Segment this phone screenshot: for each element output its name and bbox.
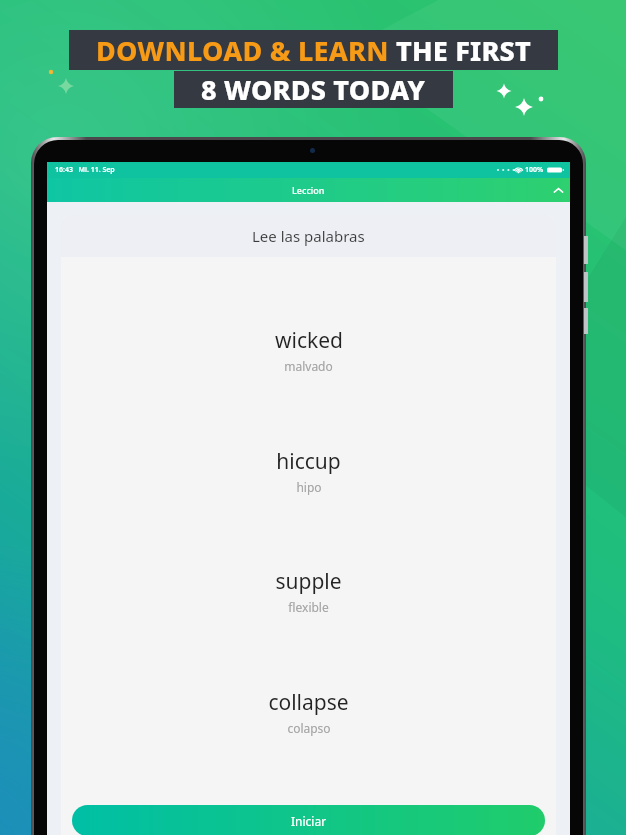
staticText: Leccion: [292, 184, 325, 196]
staticText: Iniciar: [291, 813, 327, 829]
staticText: collapse: [268, 688, 349, 717]
button[interactable]: Collapse: [546, 178, 570, 202]
button[interactable]: Iniciar: [72, 805, 545, 835]
staticText: THE FIRST: [396, 32, 531, 69]
staticText: DOWNLOAD & LEARN: [96, 32, 396, 69]
button[interactable]: hiccup: [61, 443, 556, 499]
staticText: 100%: [525, 165, 544, 175]
staticText: hiccup: [276, 447, 341, 476]
button[interactable]: collapse: [61, 684, 556, 740]
staticText: 8 WORDS TODAY: [201, 71, 426, 108]
button[interactable]: wicked: [61, 322, 556, 378]
staticText: hipo: [296, 479, 322, 495]
staticText: flexible: [288, 599, 329, 615]
staticText: malvado: [284, 358, 333, 374]
staticText: Lee las palabras: [252, 226, 365, 246]
staticText: 16:43 Mi. 11. Sep: [55, 165, 115, 175]
staticText: wicked: [275, 326, 343, 355]
staticText: colapso: [287, 720, 331, 736]
staticText: supple: [275, 567, 342, 596]
button[interactable]: supple: [61, 563, 556, 619]
